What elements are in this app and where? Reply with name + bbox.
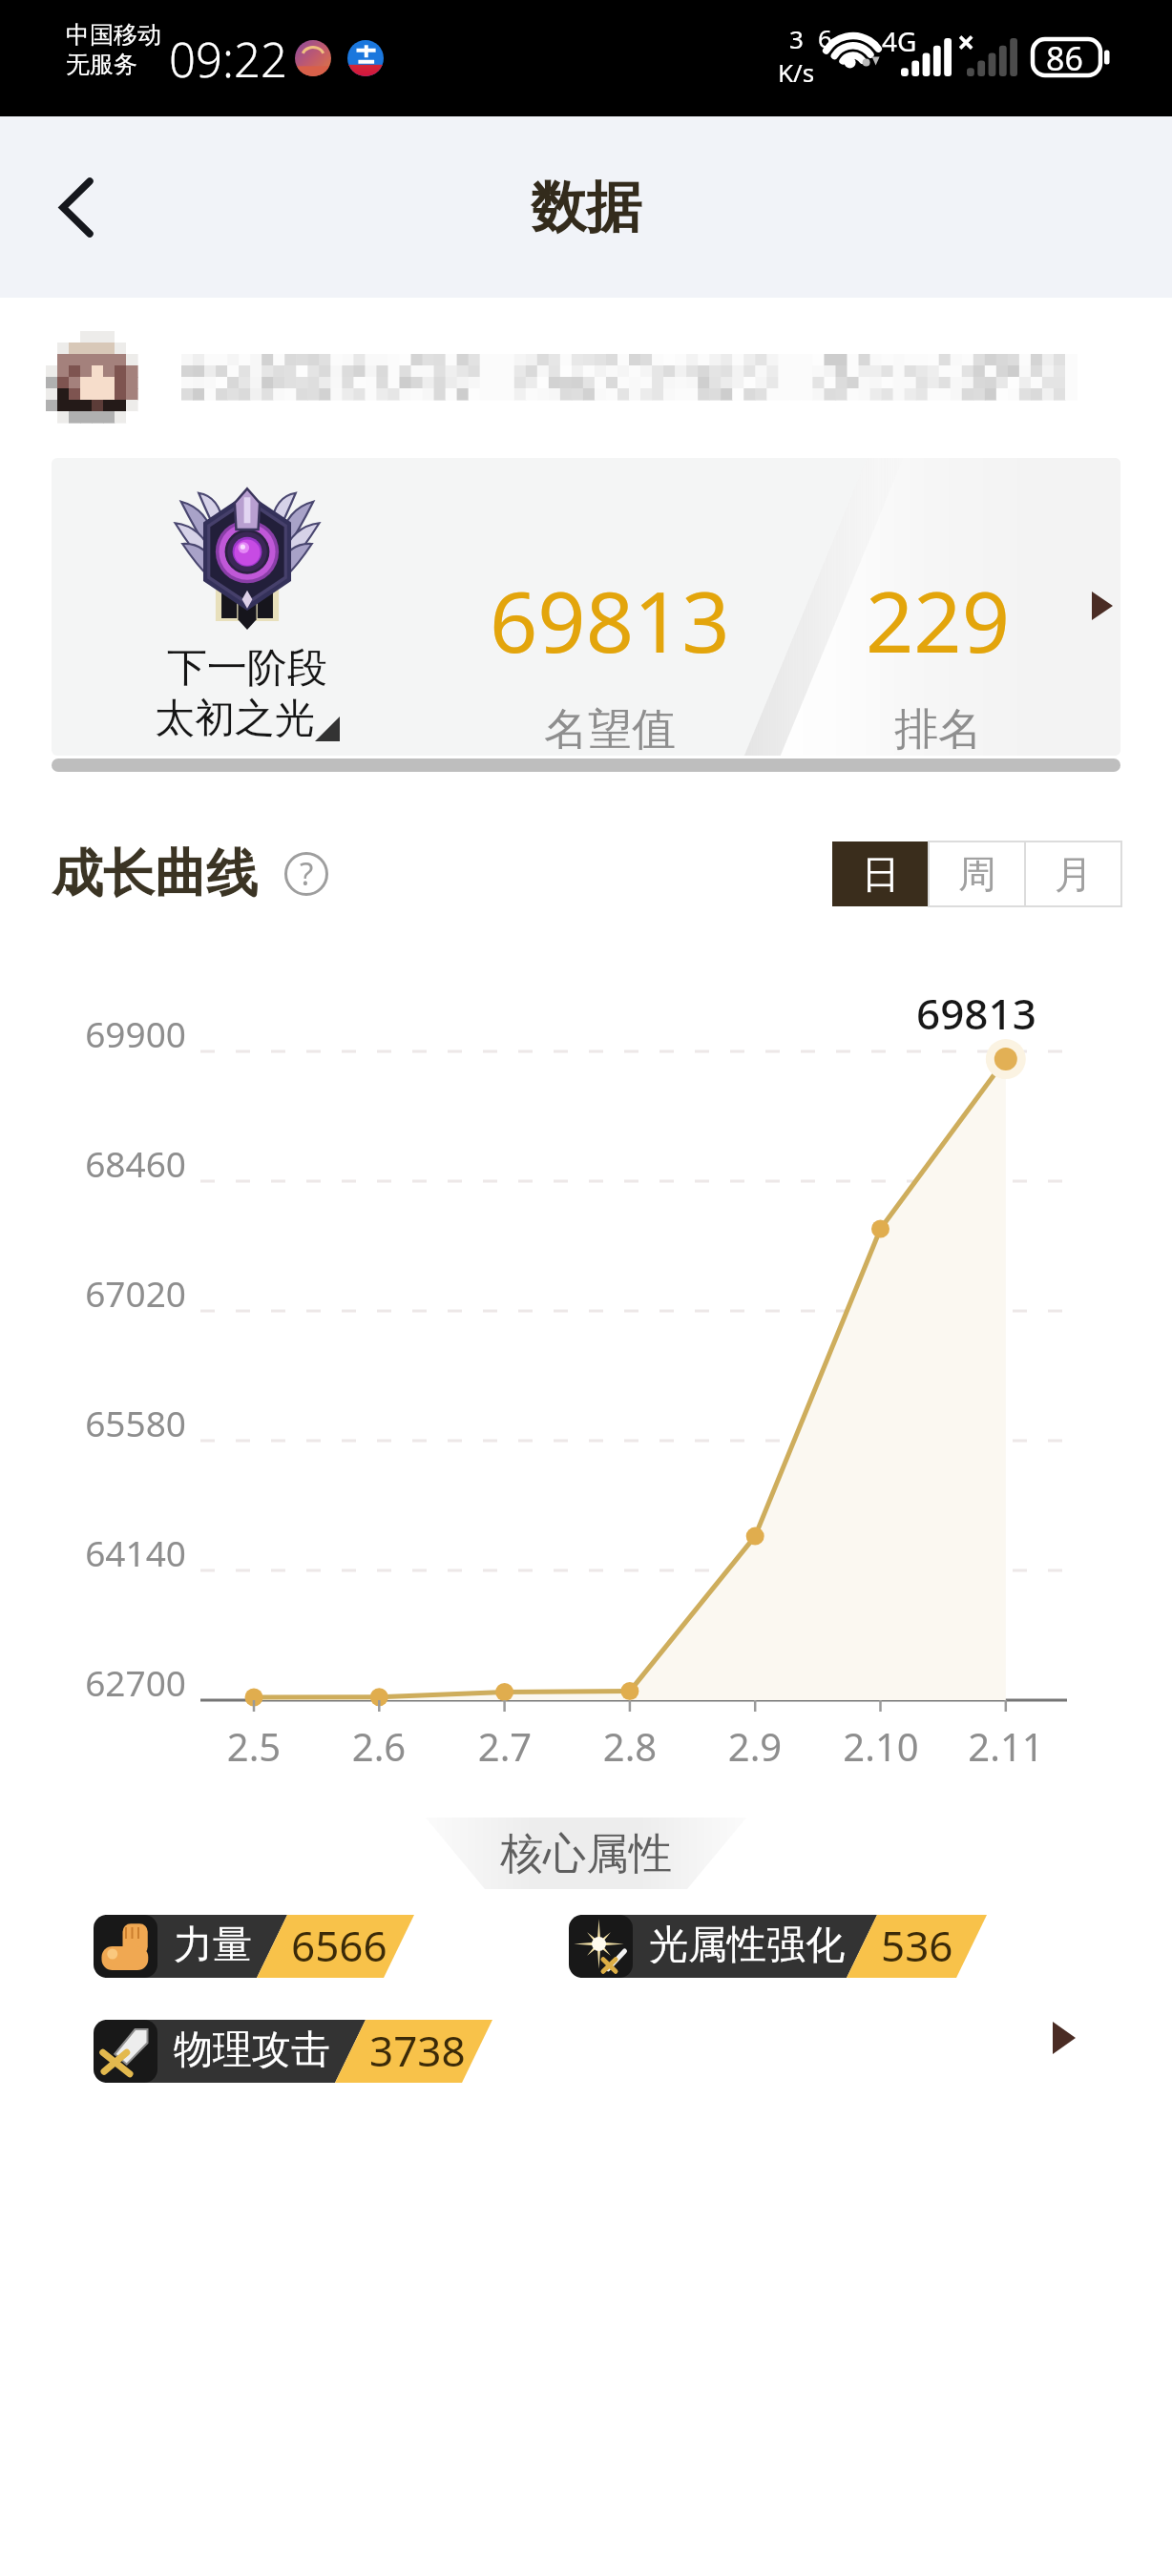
staticText: 2.7 <box>448 1720 562 1772</box>
staticText: 中国移动 <box>66 20 161 50</box>
staticText: 日 <box>862 850 900 898</box>
staticText: 2.11 <box>949 1720 1063 1772</box>
staticText: 09:22 <box>169 28 287 92</box>
staticText: 2.9 <box>698 1720 812 1772</box>
staticText: 月 <box>1055 850 1093 898</box>
staticText: 物理攻击 <box>174 2025 330 2075</box>
staticText: 2.5 <box>197 1720 311 1772</box>
staticText: 力量 <box>174 1921 252 1970</box>
button[interactable]: Back <box>27 157 126 257</box>
staticText: 6566 <box>291 1917 387 1974</box>
button[interactable]: 月 <box>1025 841 1121 906</box>
staticText: 名望值 <box>544 702 676 756</box>
button[interactable]: 下一阶段 <box>52 458 1120 756</box>
button[interactable]: 力量 <box>94 1915 414 1978</box>
staticText: 67020 <box>0 1269 186 1317</box>
button[interactable]: Help <box>284 852 328 896</box>
staticText: 65580 <box>0 1399 186 1446</box>
staticText: 太初之光 <box>155 694 315 744</box>
staticText: 3738 <box>369 2022 466 2079</box>
staticText: 2.10 <box>824 1720 938 1772</box>
staticText: 下一阶段 <box>167 643 327 694</box>
staticText: 3 <box>789 22 804 55</box>
staticText: 86 <box>1046 36 1083 76</box>
staticText: 周 <box>958 850 996 898</box>
staticText: 229 <box>866 563 1011 677</box>
staticText: K/s <box>778 55 815 89</box>
staticText: 68460 <box>0 1139 186 1187</box>
button[interactable]: More <box>1092 592 1113 620</box>
button[interactable]: 周 <box>929 841 1025 906</box>
staticText: 成长曲线 <box>52 841 258 906</box>
staticText: 2.6 <box>322 1720 436 1772</box>
staticText: 69813 <box>916 985 1036 1042</box>
staticText: 536 <box>881 1917 953 1974</box>
button[interactable]: 光属性强化 <box>569 1915 987 1978</box>
staticText: × <box>957 21 975 63</box>
staticText: 2.8 <box>573 1720 687 1772</box>
button[interactable]: 日 <box>832 841 929 906</box>
staticText: 数据 <box>531 173 641 242</box>
staticText: 6 <box>818 21 832 54</box>
button[interactable]: 物理攻击 <box>94 2020 492 2083</box>
staticText: 62700 <box>0 1658 186 1706</box>
staticText: 64140 <box>0 1528 186 1576</box>
staticText: 69900 <box>0 1009 186 1057</box>
staticText: 4G <box>882 23 917 59</box>
staticText: 光属性强化 <box>649 1921 845 1970</box>
staticText: 无服务 <box>66 50 137 79</box>
staticText: 核心属性 <box>500 1827 672 1881</box>
staticText: 排名 <box>894 702 982 756</box>
button[interactable]: Next <box>1053 2022 1076 2054</box>
staticText: ? <box>300 852 314 895</box>
staticText: 69813 <box>490 563 730 677</box>
